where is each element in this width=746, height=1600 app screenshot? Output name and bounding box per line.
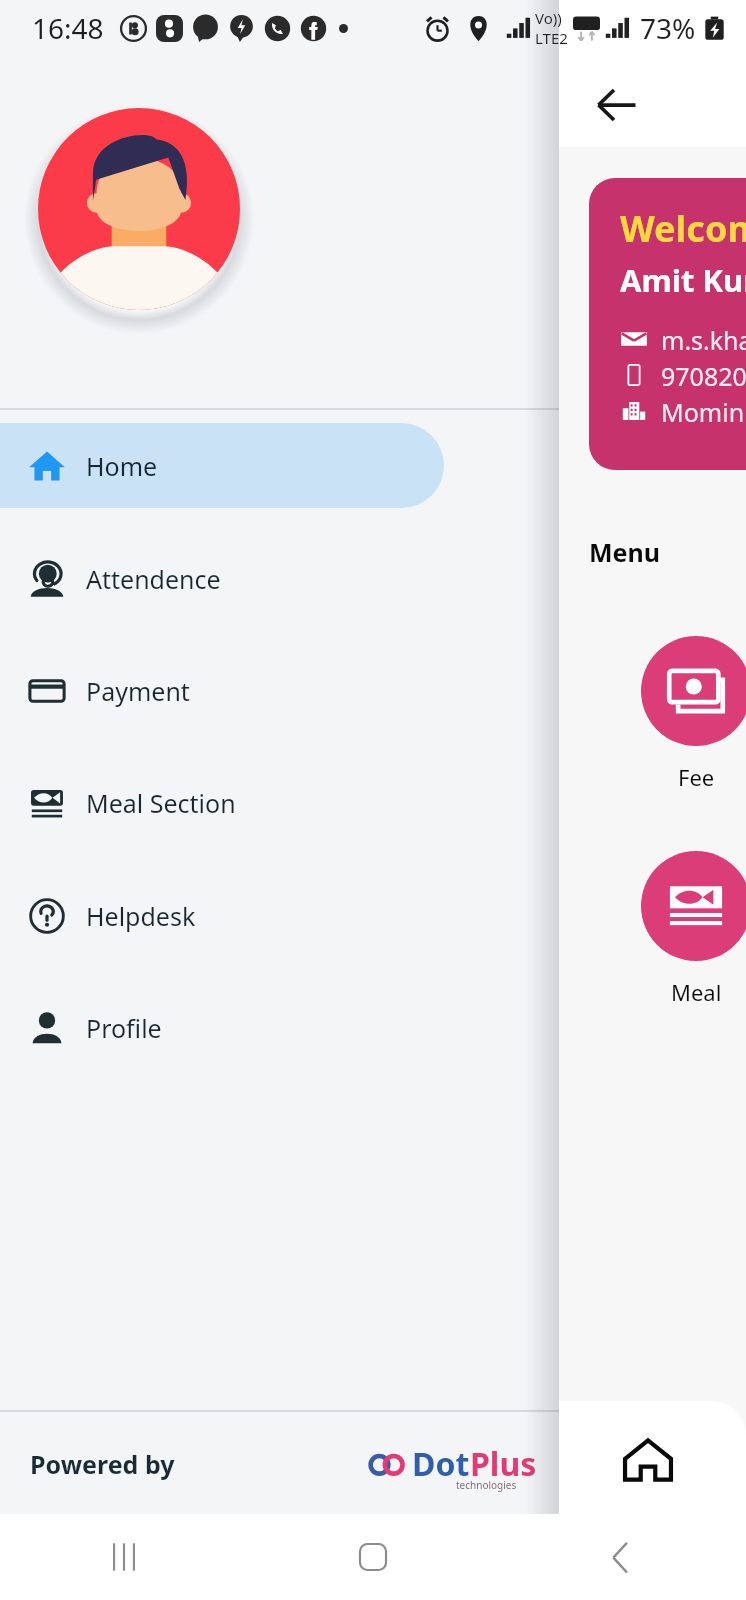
button[interactable]: Payment (0, 648, 559, 733)
staticText: Attendence (86, 562, 221, 596)
button[interactable]: Meal (641, 851, 746, 1007)
staticText: Momin Tola, Dhaka (661, 395, 746, 426)
staticText: Powered by (30, 1447, 175, 1481)
staticText: 16:48 (32, 9, 104, 47)
staticText: technologies (456, 1478, 517, 1492)
staticText: Dot (412, 1442, 470, 1486)
button[interactable]: Welcome (589, 178, 746, 470)
button[interactable]: Home (620, 1432, 676, 1488)
button[interactable]: Fee (641, 636, 746, 792)
button[interactable]: Profile (0, 985, 559, 1070)
staticText: 73% (640, 9, 696, 47)
button[interactable]: Home (342, 1526, 404, 1588)
staticText: LTE2 (535, 28, 568, 48)
button[interactable]: Back (592, 80, 642, 130)
staticText: Vo)) (535, 8, 562, 28)
button[interactable]: Helpdesk (0, 873, 559, 958)
staticText: Amit Kumar (620, 259, 746, 301)
staticText: 9708200200 (661, 359, 746, 390)
staticText: Menu (589, 535, 661, 569)
staticText: Meal (671, 977, 722, 1007)
staticText: Welcome (620, 204, 746, 253)
staticText: m.s.khalil2015@gmail.com (661, 323, 746, 354)
button[interactable]: Back (591, 1526, 653, 1588)
button[interactable]: Home (0, 423, 559, 508)
button[interactable]: Meal Section (0, 760, 559, 845)
staticText: Fee (678, 762, 715, 792)
staticText: Plus (470, 1442, 537, 1486)
staticText: Payment (86, 674, 190, 708)
staticText: Helpdesk (86, 899, 196, 933)
button[interactable]: Recents (93, 1526, 155, 1588)
staticText: Meal Section (86, 786, 236, 820)
staticText: Home (86, 449, 158, 483)
staticText: Profile (86, 1011, 162, 1045)
button[interactable]: Attendence (0, 536, 559, 621)
button[interactable]: Profile photo (38, 108, 240, 310)
